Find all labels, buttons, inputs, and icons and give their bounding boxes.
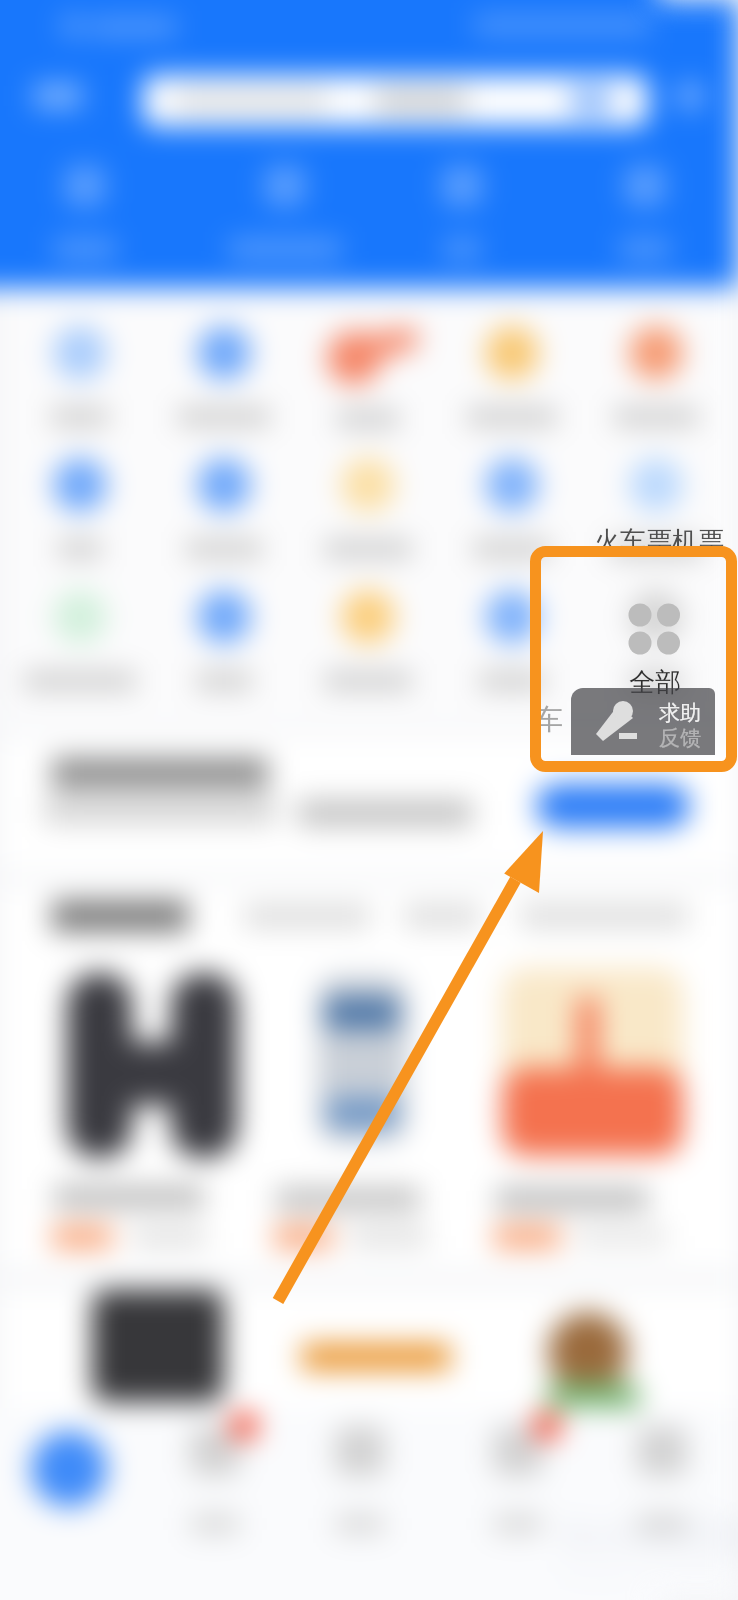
button[interactable]: Shortcut — [225, 166, 345, 258]
button[interactable]: Product — [480, 962, 692, 1262]
button[interactable]: Shortcut — [585, 166, 705, 258]
button[interactable]: Open — [536, 784, 690, 828]
button[interactable]: Product — [266, 962, 478, 1262]
button[interactable]: Shortcut — [25, 166, 145, 258]
button[interactable]: All services — [541, 558, 738, 762]
button[interactable]: Service — [296, 326, 440, 428]
button[interactable]: Product — [40, 962, 252, 1262]
button[interactable]: Service — [440, 458, 584, 558]
button[interactable]: Service — [440, 326, 584, 426]
staticText: 全部 — [629, 666, 681, 699]
button[interactable]: Feedback — [571, 688, 715, 755]
button[interactable]: Tab — [300, 1426, 420, 1534]
button[interactable]: Search — [143, 75, 648, 127]
button[interactable]: Shortcut — [402, 166, 522, 258]
button[interactable]: Service — [584, 326, 728, 426]
button[interactable]: Service — [8, 590, 152, 690]
staticText: Baidu经验 — [560, 1506, 738, 1561]
staticText: 求助 — [659, 700, 701, 726]
button[interactable]: Service — [152, 590, 296, 690]
button[interactable]: Service — [584, 590, 728, 690]
staticText: 反馈 — [659, 725, 701, 751]
button[interactable]: Service — [440, 590, 584, 690]
staticText: 车 — [535, 702, 563, 737]
button[interactable]: Service — [584, 458, 728, 558]
button[interactable]: Service — [152, 326, 296, 426]
button[interactable]: Service — [8, 326, 152, 426]
button[interactable]: Open — [0, 736, 738, 872]
button[interactable]: Service — [8, 458, 152, 558]
button[interactable]: Tab — [155, 1426, 275, 1534]
button[interactable]: Service — [296, 458, 440, 558]
button[interactable]: Tab — [458, 1426, 578, 1534]
button[interactable]: Tab — [602, 1426, 722, 1534]
button[interactable]: Home — [9, 1412, 129, 1562]
button[interactable]: Service — [152, 458, 296, 558]
staticText: 火车票机票 — [594, 525, 724, 558]
button[interactable]: Service — [296, 590, 440, 690]
